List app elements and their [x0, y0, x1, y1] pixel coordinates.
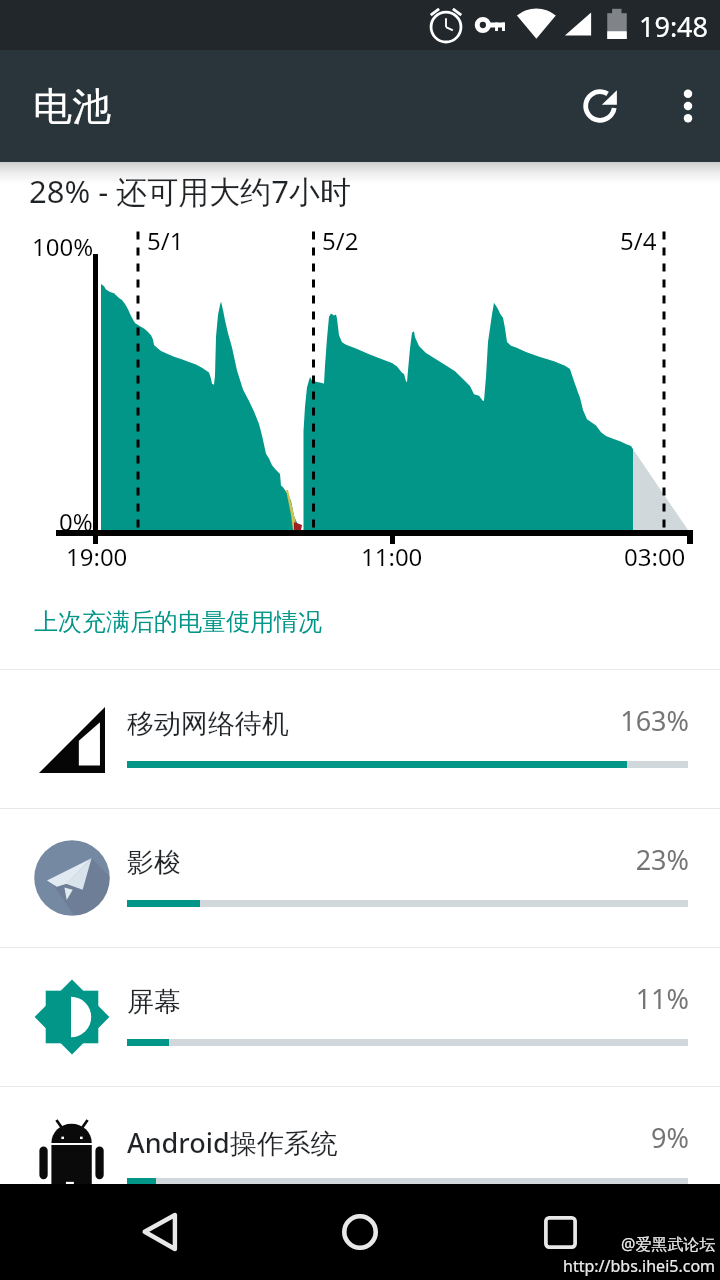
staticText: 0%: [59, 505, 93, 538]
button[interactable]: Refresh: [556, 50, 644, 162]
staticText: 28% - 还可用大约7小时: [29, 170, 352, 212]
staticText: 19:00: [66, 540, 128, 573]
staticText: 19:48: [639, 8, 709, 45]
staticText: 5/4: [620, 224, 657, 257]
button[interactable]: More options: [644, 50, 720, 162]
staticText: 163%: [500, 702, 689, 739]
button[interactable]: 影梭: [0, 809, 720, 947]
button[interactable]: Android操作系统: [0, 1087, 720, 1225]
staticText: 5/1: [147, 224, 184, 257]
staticText: 移动网络待机: [127, 707, 289, 741]
staticText: 03:00: [624, 540, 686, 573]
staticText: 影梭: [127, 846, 181, 880]
staticText: 上次充满后的电量使用情况: [34, 607, 322, 637]
staticText: 23%: [500, 841, 689, 878]
button[interactable]: 移动网络待机: [0, 670, 720, 808]
staticText: 11:00: [361, 540, 423, 573]
button[interactable]: Recents: [530, 1184, 590, 1280]
button[interactable]: 上次充满后的电量使用情况: [0, 590, 720, 669]
staticText: http://bbs.ihei5.com: [563, 1255, 716, 1277]
button[interactable]: 屏幕: [0, 948, 720, 1086]
staticText: Android操作系统: [127, 1124, 338, 1161]
staticText: 9%: [500, 1119, 689, 1156]
staticText: 11%: [500, 980, 689, 1017]
staticText: 5/2: [322, 224, 359, 257]
staticText: 100%: [32, 230, 94, 263]
staticText: @爱黑武论坛: [621, 1233, 716, 1255]
staticText: 屏幕: [127, 985, 181, 1019]
staticText: 电池: [33, 82, 111, 131]
button[interactable]: Back: [130, 1184, 190, 1280]
button[interactable]: Home: [330, 1184, 390, 1280]
